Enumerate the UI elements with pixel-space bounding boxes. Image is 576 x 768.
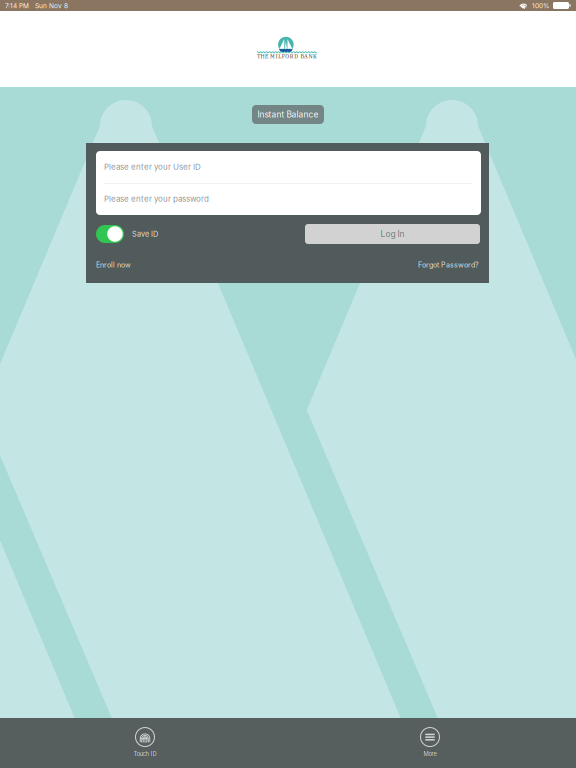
staticText: 100%: [532, 2, 549, 10]
staticText: Enroll now: [96, 261, 131, 269]
staticText: Touch ID: [133, 750, 156, 757]
staticText: Please enter your password: [104, 194, 209, 204]
staticText: Instant Balance: [257, 109, 318, 120]
button[interactable]: Enroll now: [96, 259, 146, 271]
staticText: Forgot Password?: [418, 261, 479, 269]
staticText: THE MILFORD BANK: [257, 53, 317, 60]
button[interactable]: Forgot Password?: [417, 259, 479, 271]
staticText: Save ID: [132, 230, 158, 238]
button[interactable]: Save ID: [96, 225, 176, 243]
staticText: More: [423, 750, 436, 757]
staticText: Log In: [380, 229, 404, 239]
button[interactable]: Log In: [305, 224, 480, 244]
button[interactable]: More: [398, 726, 462, 759]
staticText: Please enter your User ID: [104, 162, 201, 172]
staticText: Sun Nov 8: [35, 2, 68, 10]
staticText: 7:14 PM: [5, 2, 29, 10]
button[interactable]: Touch ID: [113, 726, 177, 759]
button[interactable]: Instant Balance: [252, 105, 324, 124]
